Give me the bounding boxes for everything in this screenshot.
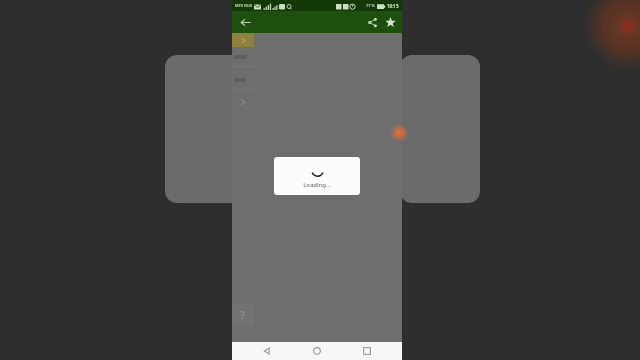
button[interactable]: Add <box>390 124 408 142</box>
staticText: 77 % <box>366 3 375 8</box>
button[interactable]: Favorite <box>381 13 399 31</box>
button[interactable]: Home <box>302 342 332 360</box>
button[interactable]: ? <box>232 303 254 325</box>
button[interactable]: Back <box>252 342 282 360</box>
staticText: Loading... <box>303 181 331 189</box>
button[interactable]: Back <box>236 13 254 31</box>
button[interactable]: Recents <box>352 342 382 360</box>
staticText: ? <box>240 307 246 322</box>
staticText: MTS RUS <box>235 3 252 8</box>
button[interactable] <box>232 33 254 47</box>
button[interactable]: Expand <box>237 95 249 109</box>
staticText: 10:15 <box>387 3 399 9</box>
button[interactable]: Share <box>363 13 381 31</box>
